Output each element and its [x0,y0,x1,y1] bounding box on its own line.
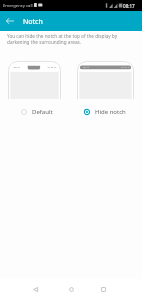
staticText: Notch [23,17,43,27]
staticText: Hide notch [95,108,126,116]
button[interactable]: Default [16,105,53,119]
button[interactable]: Home [61,279,81,300]
staticText: Default [32,108,53,116]
staticText: 08:17 [123,3,135,9]
staticText: Emergency call [3,3,33,9]
staticText: You can hide the notch at the top of the… [7,33,120,45]
button[interactable]: Hide notch [77,61,134,99]
button[interactable]: Back [0,11,20,31]
button[interactable]: Back [25,279,45,300]
button[interactable]: Hide notch [79,105,126,119]
button[interactable]: Recents [93,279,113,300]
button[interactable]: Default [8,61,61,99]
